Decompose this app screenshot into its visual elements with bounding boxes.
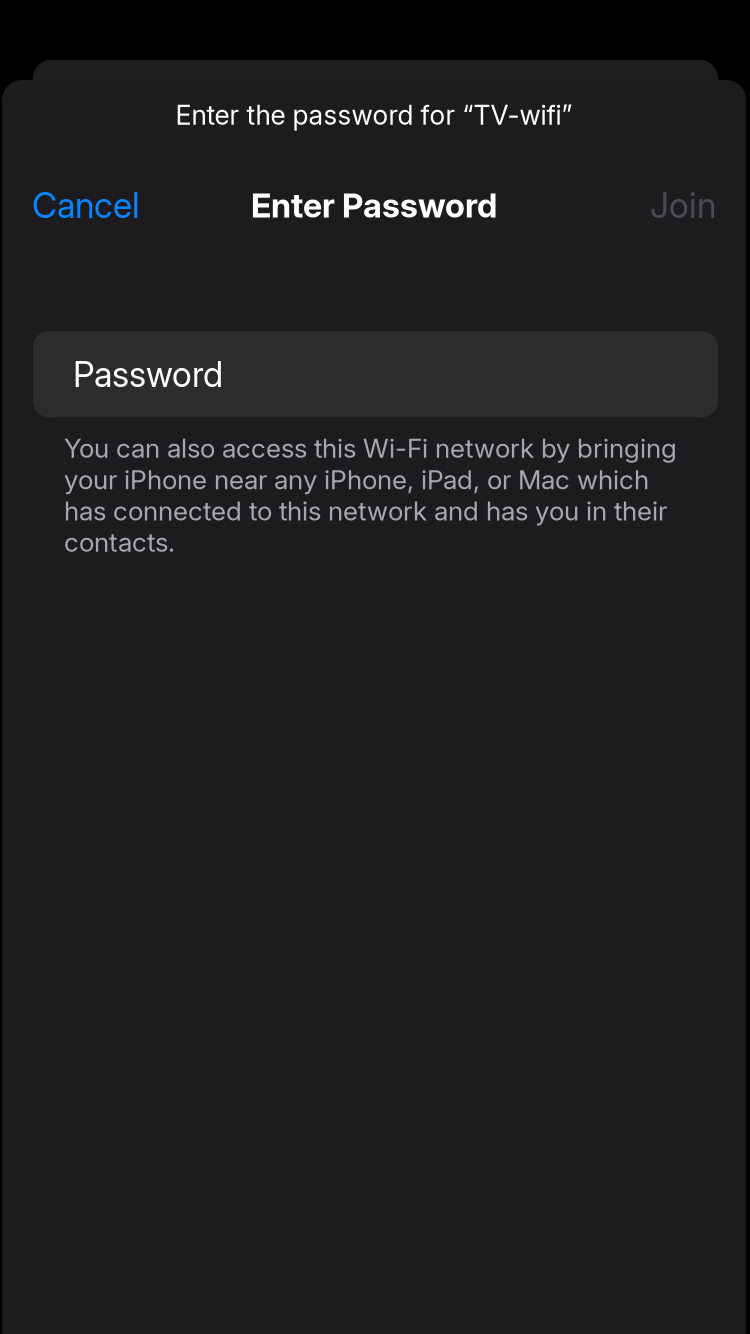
button[interactable]: Join [650,183,716,227]
staticText: Enter the password for “TV-wifi” [175,99,572,131]
staticText: Join [650,184,716,226]
staticText: Enter Password [251,185,497,225]
staticText: Password [73,353,223,395]
staticText: Cancel [32,184,140,226]
button[interactable]: Password [33,331,718,417]
staticText: You can also access this Wi-Fi network b… [64,432,677,558]
button[interactable]: Cancel [32,183,140,227]
